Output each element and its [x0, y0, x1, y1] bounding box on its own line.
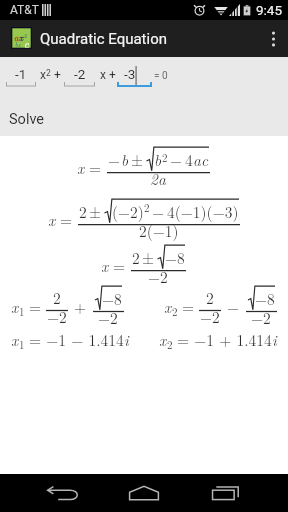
staticText: −2: [200, 306, 220, 328]
staticText: 9:45: [256, 2, 283, 18]
staticText: -1: [15, 66, 27, 82]
staticText: i: [272, 329, 277, 351]
staticText: +: [51, 68, 61, 82]
staticText: a: [14, 31, 19, 44]
staticText: Quadratic Equation: [40, 30, 168, 48]
staticText: −2: [148, 266, 168, 288]
staticText: =: [60, 209, 73, 231]
staticText: x: [101, 255, 109, 277]
staticText: 4: [185, 149, 193, 171]
staticText: 2: [79, 201, 87, 223]
button[interactable]: Solve: [0, 102, 288, 136]
staticText: ac: [193, 149, 209, 171]
staticText: ±: [89, 201, 102, 223]
staticText: x: [11, 296, 19, 318]
staticText: = −1 − 1.414: [29, 329, 124, 351]
staticText: 2: [144, 200, 150, 216]
button[interactable]: More options: [258, 20, 288, 57]
staticText: 1: [19, 337, 25, 353]
staticText: x: [159, 329, 167, 351]
staticText: −: [227, 296, 240, 318]
staticText: x: [19, 31, 24, 44]
button[interactable]: -3: [117, 65, 152, 89]
button[interactable]: -1: [6, 65, 36, 89]
staticText: =: [89, 157, 102, 179]
staticText: x: [164, 296, 172, 318]
staticText: ±: [142, 247, 155, 269]
staticText: -3: [124, 66, 136, 82]
staticText: = 0: [154, 70, 168, 82]
staticText: =: [29, 296, 42, 318]
staticText: x: [40, 68, 46, 82]
staticText: −8: [165, 247, 185, 269]
staticText: 1: [19, 304, 25, 320]
staticText: 2(−1): [139, 220, 179, 242]
staticText: bx: [15, 40, 22, 49]
staticText: −2: [98, 307, 118, 329]
staticText: 2: [172, 304, 178, 320]
staticText: x: [77, 157, 85, 179]
staticText: −8: [102, 288, 122, 310]
staticText: x: [100, 68, 106, 82]
button[interactable]: Back: [36, 474, 90, 512]
staticText: 2: [167, 337, 173, 353]
staticText: b: [121, 149, 129, 171]
staticText: 4(−1)(−3): [167, 201, 239, 223]
staticText: x: [11, 329, 19, 351]
button[interactable]: Recent apps: [198, 474, 252, 512]
staticText: −2: [251, 307, 271, 329]
staticText: 2a: [150, 168, 166, 190]
staticText: 2: [53, 287, 61, 309]
staticText: −8: [255, 288, 275, 310]
staticText: 2: [206, 287, 214, 309]
staticText: +: [74, 296, 87, 318]
staticText: (−2): [112, 201, 144, 223]
staticText: x: [48, 209, 56, 231]
staticText: c: [24, 37, 29, 51]
staticText: i: [124, 329, 129, 351]
button[interactable]: -2: [64, 65, 95, 89]
staticText: -2: [74, 66, 86, 82]
staticText: ±: [131, 149, 144, 171]
staticText: Solve: [9, 111, 45, 128]
staticText: +: [106, 68, 116, 82]
staticText: −: [108, 149, 121, 171]
staticText: 2: [132, 247, 140, 269]
button[interactable]: Home: [117, 474, 171, 512]
staticText: b: [154, 149, 162, 171]
staticText: = −1 + 1.414: [177, 329, 272, 351]
staticText: 2: [162, 150, 168, 166]
staticText: −2: [47, 306, 67, 328]
staticText: −: [152, 201, 165, 223]
staticText: =: [113, 255, 126, 277]
staticText: AT&T: [10, 3, 39, 17]
staticText: 2: [46, 68, 51, 78]
staticText: 2: [24, 31, 28, 40]
staticText: −: [170, 149, 183, 171]
staticText: =: [182, 296, 195, 318]
